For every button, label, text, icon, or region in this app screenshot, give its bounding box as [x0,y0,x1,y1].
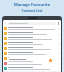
button[interactable]: Select contact [4,61,60,66]
staticText: Manage Favourite [0,2,64,7]
button[interactable]: Favourite [7,57,55,64]
button[interactable]: Select contact [4,51,60,56]
button[interactable]: Back [4,20,60,26]
button[interactable]: Select contact [4,66,60,71]
button[interactable]: Select contact [4,31,60,36]
button[interactable]: Select contact [4,46,60,51]
button[interactable]: Select contact [4,26,60,31]
button[interactable]: More options [57,22,60,25]
button[interactable]: Select contact [4,56,60,61]
other: Back [4,22,7,25]
button[interactable]: Select contact [4,41,60,46]
button[interactable]: Favourite [48,58,53,63]
button[interactable]: Select contact [4,36,60,41]
staticText: Contact List [0,8,64,13]
